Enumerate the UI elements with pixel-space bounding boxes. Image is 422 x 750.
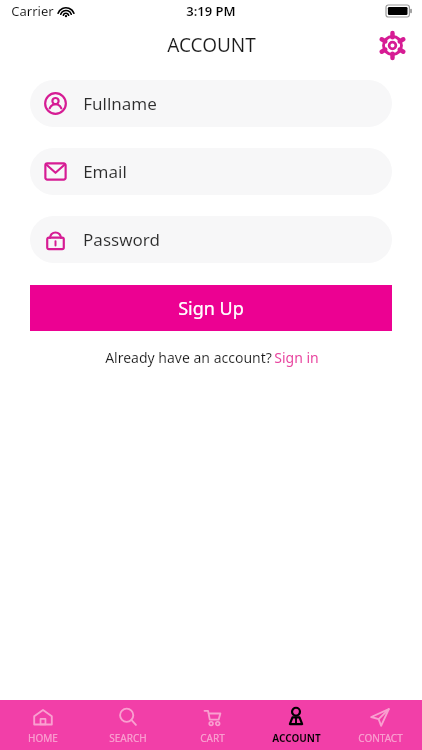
staticText: Sign Up <box>178 296 244 321</box>
staticText: SEARCH <box>109 731 147 745</box>
staticText: ACCOUNT <box>167 32 256 58</box>
staticText: Already have an account? <box>103 348 274 367</box>
staticText: HOME <box>28 731 58 745</box>
staticText: Email <box>83 160 127 183</box>
staticText: 3:19 PM <box>186 2 236 20</box>
staticText: CONTACT <box>358 731 403 745</box>
staticText: Fullname <box>83 92 157 115</box>
staticText: Carrier <box>11 2 54 20</box>
button[interactable]: Email <box>30 148 392 195</box>
button[interactable]: HOME <box>0 701 85 749</box>
staticText: Password <box>83 228 160 251</box>
staticText: Sign in <box>274 348 319 367</box>
button[interactable]: Sign Up <box>30 285 392 331</box>
button[interactable]: Fullname <box>30 80 392 127</box>
button[interactable]: ACCOUNT <box>254 701 338 749</box>
staticText: ACCOUNT <box>272 731 321 745</box>
button[interactable]: Settings <box>375 28 409 62</box>
button[interactable]: CART <box>170 701 254 749</box>
button[interactable]: Password <box>30 216 392 263</box>
button[interactable]: Sign in <box>274 348 319 367</box>
staticText: CART <box>200 731 225 745</box>
button[interactable]: SEARCH <box>85 701 170 749</box>
button[interactable]: CONTACT <box>338 701 422 749</box>
